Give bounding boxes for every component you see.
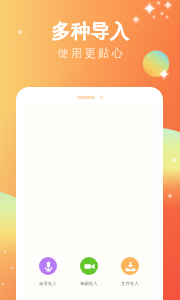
- button[interactable]: 录音导入: [27, 257, 68, 287]
- staticText: 录音导入: [39, 281, 57, 287]
- staticText: 视频导入: [80, 281, 98, 287]
- button[interactable]: 视频导入: [68, 257, 109, 287]
- staticText: 文件导入: [121, 281, 139, 287]
- staticText: 多种导入: [51, 20, 129, 44]
- staticText: 使用更贴心: [56, 46, 124, 60]
- button[interactable]: 文件导入: [109, 257, 150, 287]
